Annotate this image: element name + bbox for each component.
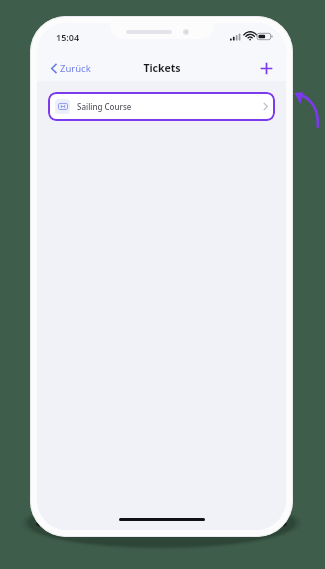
staticText: Sailing Course xyxy=(77,101,263,112)
staticText: 15:04 xyxy=(56,31,80,43)
other: Pointer arrow xyxy=(292,88,322,130)
button[interactable]: Zurück xyxy=(49,59,93,78)
button[interactable]: Add ticket xyxy=(257,59,276,78)
staticText: Zurück xyxy=(60,62,91,75)
staticText: Tickets xyxy=(143,61,181,75)
button[interactable]: Sailing Course xyxy=(48,92,275,121)
